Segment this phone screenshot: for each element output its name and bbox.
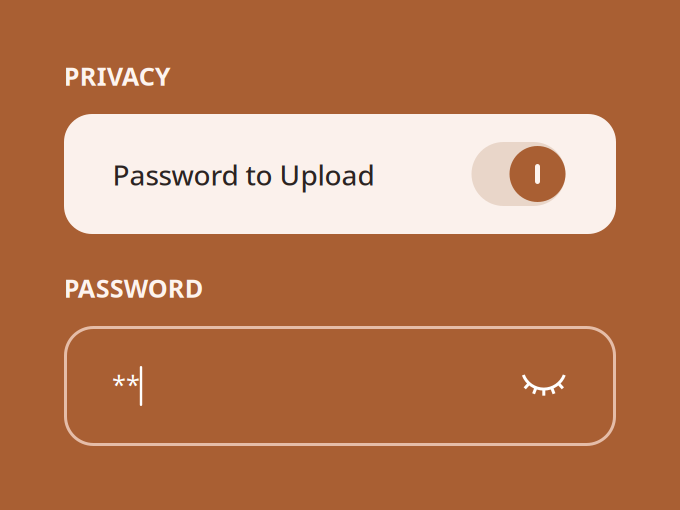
- staticText: PRIVACY: [64, 59, 171, 93]
- staticText: PASSWORD: [64, 271, 204, 305]
- staticText: Password to Upload: [112, 155, 374, 194]
- button[interactable]: Show password: [514, 349, 574, 399]
- button[interactable]: Password: [64, 326, 616, 446]
- staticText: **: [112, 367, 140, 401]
- button[interactable]: Password to Upload: [64, 114, 616, 234]
